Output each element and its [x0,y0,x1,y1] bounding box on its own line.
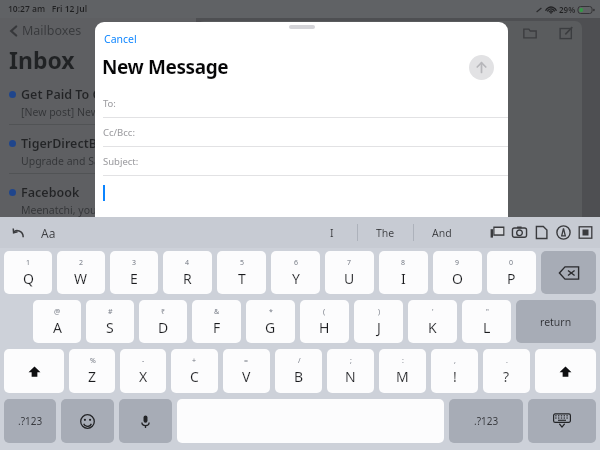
staticText: ; [350,356,352,366]
staticText: I [330,226,334,240]
button[interactable]: 1 [4,251,52,294]
staticText: 3 [132,258,137,268]
button[interactable]: The [358,217,413,248]
button[interactable]: . [483,349,530,393]
button[interactable]: 7 [325,251,374,294]
staticText: ' [432,307,434,317]
button[interactable]: , [431,349,478,393]
staticText: T [238,269,246,288]
button[interactable]: 0 [487,251,536,294]
button[interactable]: Cc/Bcc: [95,118,508,147]
button[interactable]: Undo [10,224,28,242]
button[interactable]: / [275,349,322,393]
button[interactable]: Get Paid To Com [9,81,196,130]
button[interactable]: ' [408,300,457,343]
staticText: ? [503,367,510,386]
staticText: 6 [294,258,299,268]
staticText: K [428,318,437,337]
staticText: 8 [401,258,406,268]
staticText: M [396,367,409,386]
button[interactable]: Hide keyboard [528,399,596,443]
button[interactable]: To: [95,89,508,118]
button[interactable]: Facebook [9,179,196,228]
button[interactable]: I [307,217,357,248]
staticText: E [130,269,138,288]
button[interactable]: + [171,349,218,393]
staticText: Subject: [103,155,139,168]
staticText: return [540,315,572,329]
button[interactable]: Shift [4,349,64,393]
button[interactable]: 6 [271,251,320,294]
button[interactable]: Camera [511,224,528,241]
button[interactable]: return [516,300,596,343]
staticText: . [506,356,508,366]
button[interactable]: TigerDirectB2B [9,130,196,179]
staticText: - [142,356,145,366]
button[interactable]: Markup [555,224,572,241]
button[interactable]: ; [327,349,374,393]
button[interactable]: Backspace [541,251,596,294]
button[interactable]: .?123 [4,399,56,443]
button[interactable]: ₹ [139,300,187,343]
button[interactable]: And [414,217,469,248]
staticText: 4 [185,258,190,268]
button[interactable]: 4 [163,251,212,294]
staticText: J [377,318,381,337]
staticText: [New post] New Ta [21,105,113,119]
button[interactable]: Send [469,55,494,80]
button[interactable]: Subject: [95,147,508,176]
staticText: N [345,367,356,386]
button[interactable]: Move to folder [520,23,540,43]
staticText: ! [453,367,457,386]
button[interactable]: - [120,349,166,393]
staticText: Meenatchi, you hav [21,203,117,217]
button[interactable]: * [246,300,295,343]
button[interactable]: ) [354,300,403,343]
button[interactable]: Shift [535,349,596,393]
button[interactable]: Photos [489,224,506,241]
staticText: 5 [240,258,245,268]
staticText: / [298,356,301,366]
button[interactable]: Delete [484,23,504,43]
staticText: @ [54,307,61,317]
staticText: 1 [26,258,31,268]
button[interactable]: # [86,300,134,343]
button[interactable]: % [69,349,115,393]
staticText: New Message [102,54,229,80]
button[interactable]: ( [300,300,349,343]
button[interactable]: 2 [57,251,105,294]
button[interactable]: 9 [433,251,482,294]
staticText: & [214,307,220,317]
staticText: Facebook [21,184,80,201]
staticText: , [454,356,456,366]
staticText: W [74,269,88,288]
staticText: Y [292,269,300,288]
staticText: Mailboxes [22,22,82,39]
button[interactable]: Cancel [102,31,139,47]
staticText: U [344,269,355,288]
button[interactable]: Emoji [61,399,114,443]
button[interactable]: Aa [38,222,59,244]
staticText: X [139,367,148,386]
staticText: = [244,356,249,366]
staticText: P [507,269,516,288]
staticText: % [90,356,96,366]
button[interactable]: : [379,349,426,393]
button[interactable]: 3 [110,251,158,294]
button[interactable]: " [462,300,511,343]
button[interactable]: 5 [217,251,266,294]
button[interactable]: & [192,300,241,343]
button[interactable]: .?123 [449,399,523,443]
staticText: And [432,226,452,240]
button[interactable]: @ [33,300,81,343]
staticText: : [402,356,404,366]
button[interactable]: Scan [577,224,594,241]
staticText: 29% [559,4,576,15]
button[interactable]: Compose [556,23,576,43]
button[interactable]: = [223,349,270,393]
button[interactable]: Document [533,224,550,241]
button[interactable]: 8 [379,251,428,294]
staticText: L [483,318,491,337]
button[interactable]: Dictation [119,399,172,443]
